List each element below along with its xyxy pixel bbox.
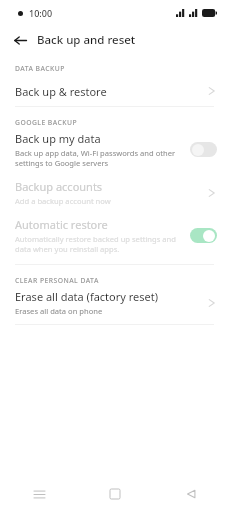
staticText: Automatic restore [15, 217, 108, 232]
button[interactable]: Home [102, 481, 128, 507]
staticText: Back up & restore [15, 84, 107, 99]
button[interactable]: Erase all data (factory reset) [0, 288, 229, 317]
staticText: Back up app data, Wi-Fi passwords and ot… [15, 148, 176, 168]
staticText: Backup accounts [15, 179, 103, 194]
button[interactable]: Backup accounts [0, 178, 229, 207]
button[interactable]: Back [9, 29, 31, 51]
staticText: 10:00 [29, 7, 53, 19]
button[interactable]: Back [178, 481, 204, 507]
staticText: Add a backup account now [15, 196, 111, 206]
staticText: Back up my data [15, 131, 101, 146]
button[interactable]: Automatic restore [0, 216, 229, 255]
staticText: CLEAR PERSONAL DATA [15, 276, 99, 285]
button[interactable]: Recents [26, 481, 52, 507]
button[interactable]: Off [190, 142, 217, 157]
button[interactable]: On [190, 228, 217, 243]
staticText: Erases all data on phone [15, 306, 103, 316]
button[interactable]: Back up & restore [0, 76, 229, 106]
staticText: GOOGLE BACKUP [15, 118, 78, 127]
staticText: Erase all data (factory reset) [15, 289, 159, 304]
staticText: DATA BACKUP [15, 64, 65, 73]
staticText: Automatically restore backed up settings… [15, 234, 176, 254]
staticText: Back up and reset [37, 32, 136, 48]
button[interactable]: Back up my data [0, 130, 229, 169]
